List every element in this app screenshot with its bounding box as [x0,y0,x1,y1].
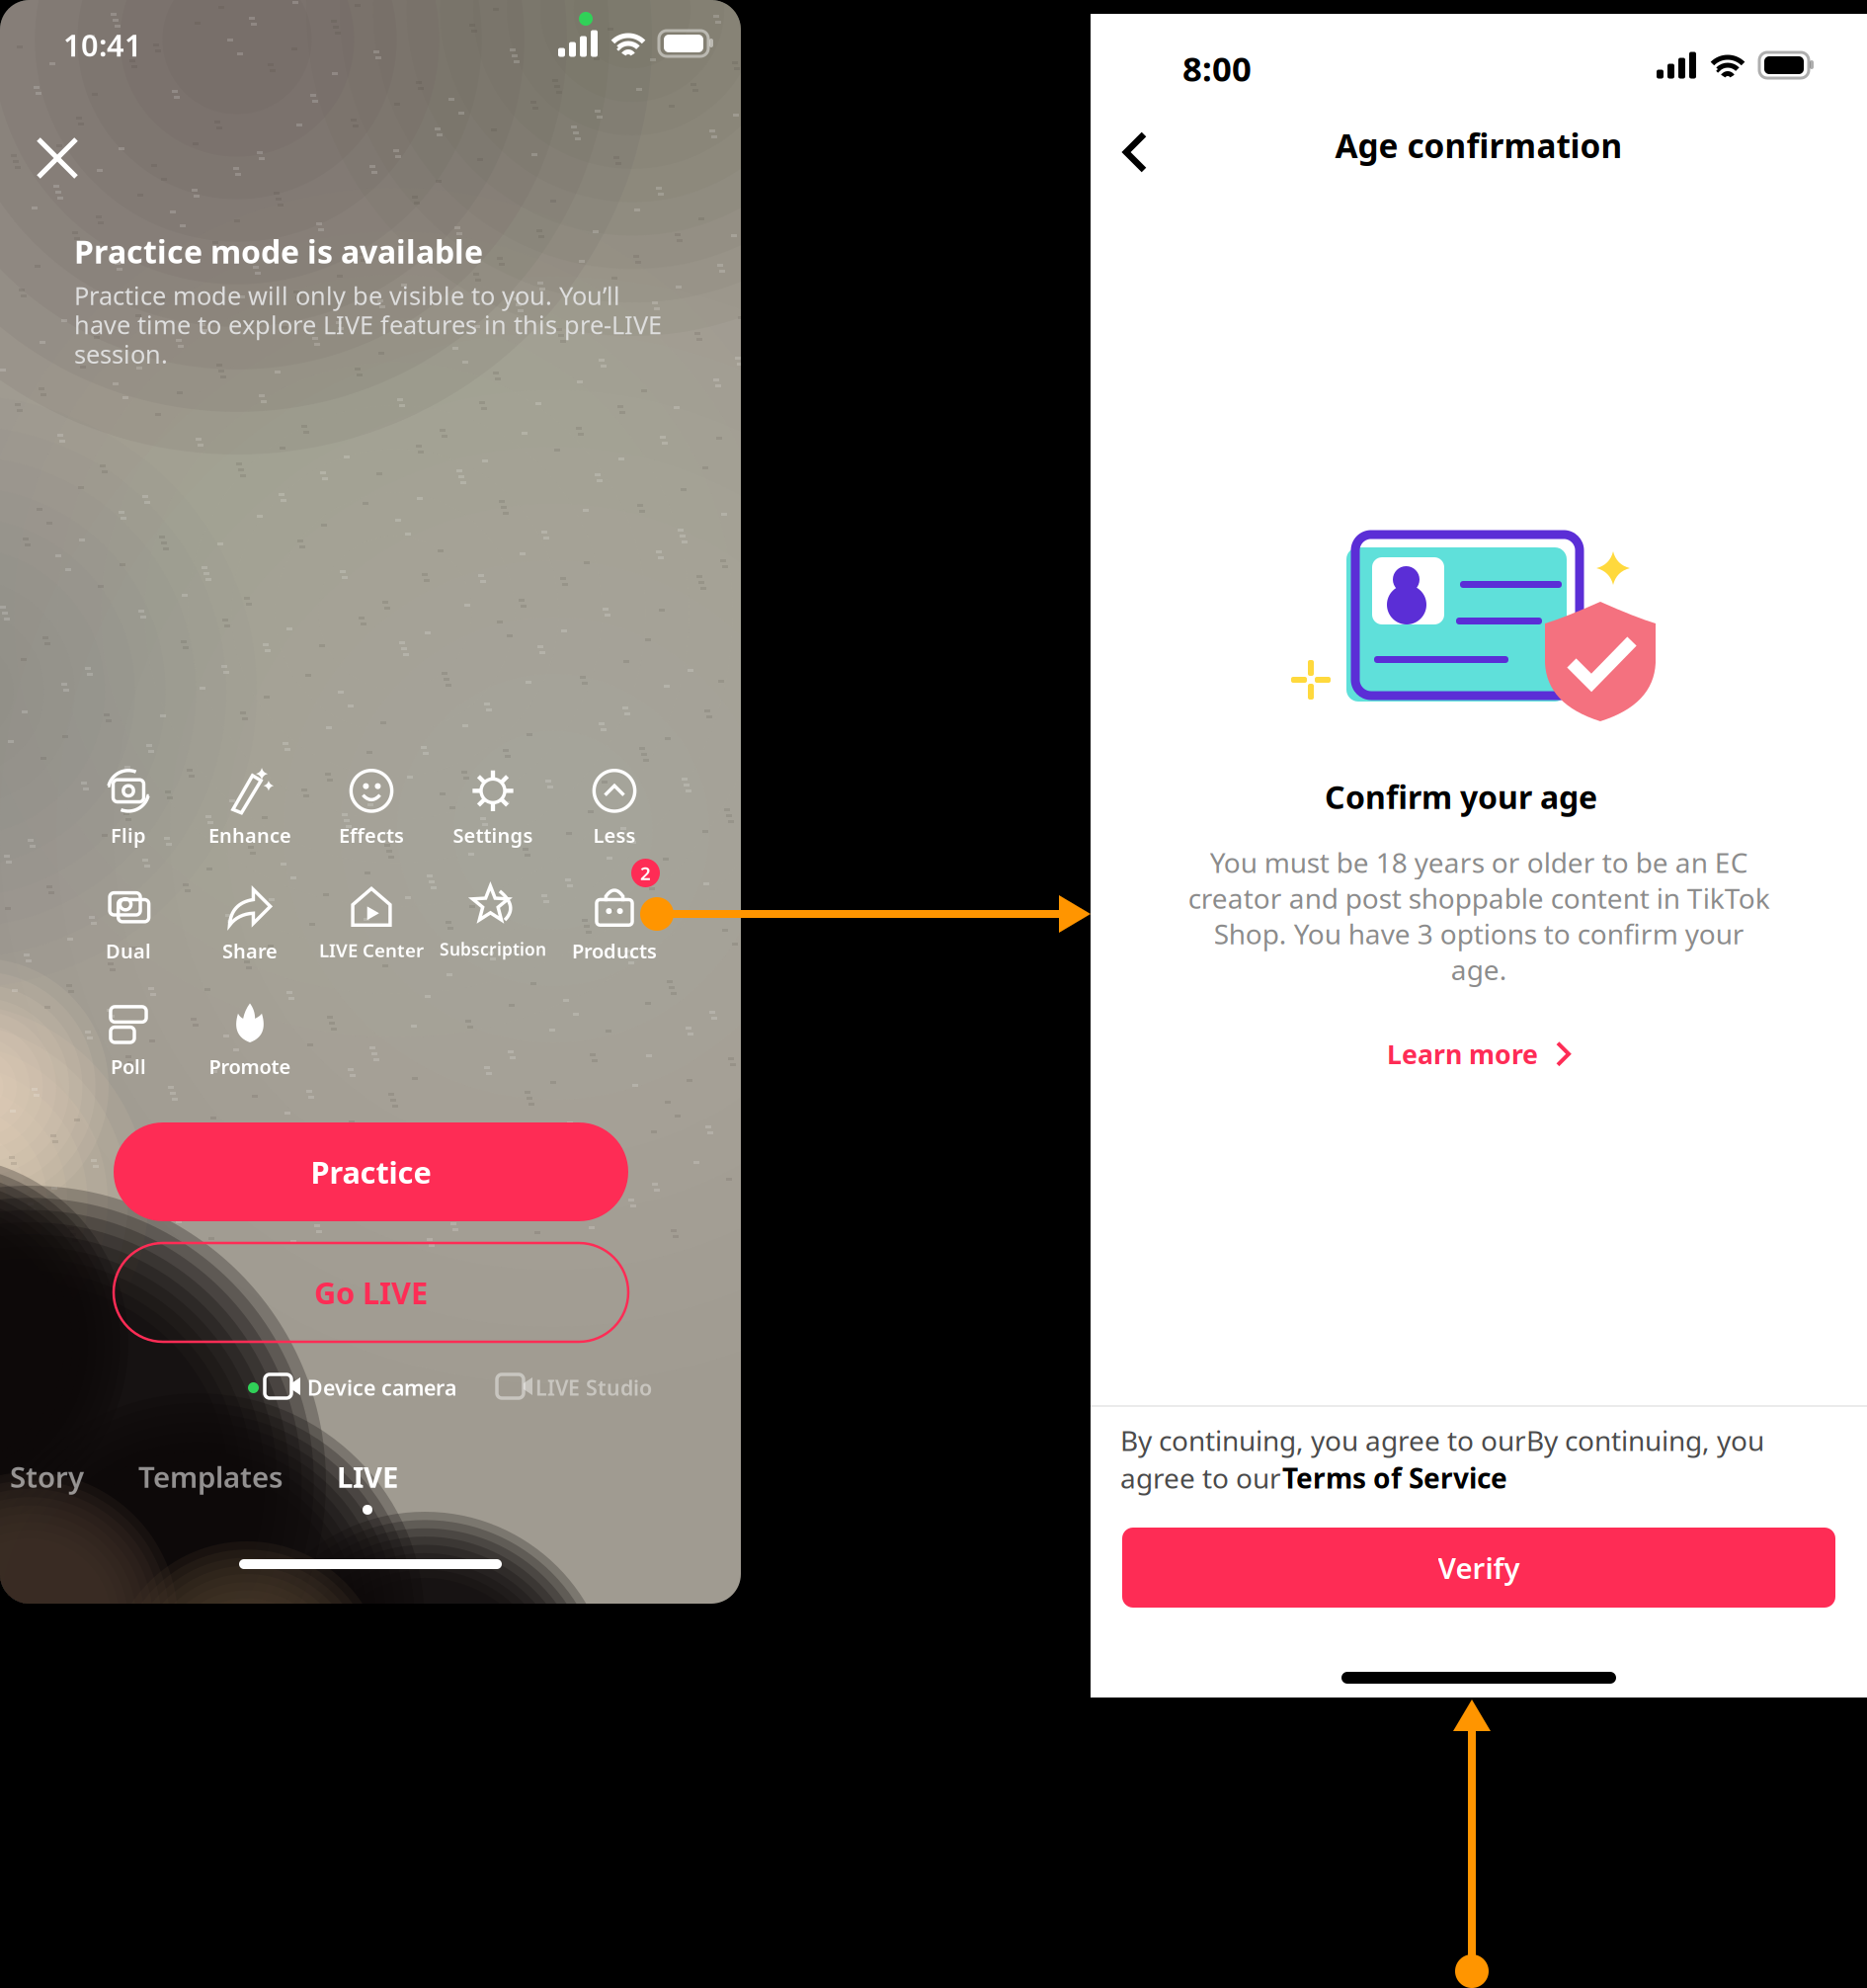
staticText: Practice mode will only be visible to yo… [74,279,662,370]
staticText: Device camera [307,1373,456,1401]
staticText: You must be 18 years or older to be an E… [1188,844,1770,988]
button[interactable]: Effects [342,769,401,868]
button[interactable]: Back [1120,130,1150,170]
staticText: Age confirmation [1335,124,1623,167]
staticText: Products [572,938,657,964]
staticText: Verify [1438,1548,1520,1587]
staticText: Practice mode is available [74,230,483,272]
staticText: Learn more [1387,1036,1538,1071]
staticText: Story [10,1457,84,1496]
button[interactable]: Share [220,884,280,983]
button[interactable]: Dual [99,884,158,983]
staticText: Go LIVE [314,1272,428,1312]
staticText: Promote [209,1053,291,1080]
staticText: Practice [311,1152,431,1192]
staticText: Subscription [440,938,546,960]
staticText: LIVE [337,1457,398,1496]
button[interactable]: Templates [138,1457,283,1496]
button[interactable]: Flip [99,769,158,868]
button[interactable]: Less [585,769,644,868]
staticText: Effects [339,822,404,848]
staticText: Terms of Service [1282,1459,1507,1496]
staticText: Less [593,822,636,848]
staticText: Confirm your age [1325,776,1597,818]
button[interactable]: Practice [114,1122,628,1221]
staticText: Settings [453,822,533,848]
staticText: 10:41 [63,25,142,65]
staticText: Dual [106,938,151,964]
staticText: LIVE Studio [535,1373,652,1401]
button[interactable]: Learn more [1091,1036,1867,1071]
button[interactable]: Subscription [463,884,523,983]
button[interactable]: Settings [463,769,523,868]
staticText: 8:00 [1182,45,1252,91]
staticText: Share [222,938,278,964]
staticText: Enhance [208,822,291,848]
button[interactable]: Story [10,1457,84,1496]
button[interactable]: Products [585,884,644,983]
staticText: LIVE Center [319,938,424,962]
staticText: Flip [111,822,146,848]
button[interactable]: Close [30,130,85,186]
staticText: 2 [640,861,651,885]
button[interactable]: Promote [220,1000,280,1099]
button[interactable]: Enhance [220,769,280,868]
staticText: agree to our [1120,1459,1281,1496]
button[interactable]: LIVE Center [342,884,401,983]
button[interactable]: Poll [99,1000,158,1099]
staticText: By continuing, you agree to ourBy contin… [1120,1422,1764,1459]
button[interactable]: LIVE [337,1457,398,1515]
staticText: Templates [138,1457,283,1496]
staticText: Poll [111,1053,146,1080]
button[interactable]: Go LIVE [114,1243,628,1342]
button[interactable]: Verify [1122,1528,1835,1608]
